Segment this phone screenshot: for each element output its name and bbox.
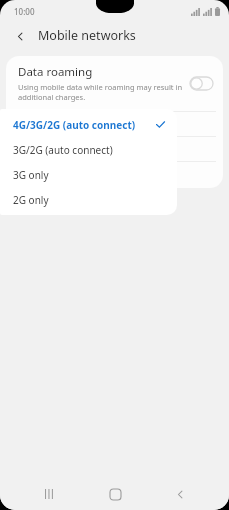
button[interactable]: 3G only: [0, 162, 177, 187]
button[interactable]: Back: [163, 478, 197, 510]
staticText: 10:00: [14, 6, 35, 17]
staticText: Network operators: [18, 167, 121, 183]
staticText: 3G/2G (auto connect): [13, 143, 166, 157]
staticText: Network mode: [18, 116, 99, 132]
button[interactable]: Network mode: [6, 112, 223, 136]
button[interactable]: 4G/3G/2G (auto connect): [0, 112, 177, 137]
button[interactable]: Data roaming: [6, 56, 223, 111]
button[interactable]: 3G/2G (auto connect): [0, 137, 177, 162]
button[interactable]: 2G only: [0, 187, 177, 212]
button[interactable]: Navigate up: [9, 25, 31, 47]
button[interactable]: Home: [98, 478, 132, 510]
staticText: Using mobile data while roaming may resu…: [18, 82, 184, 102]
staticText: Mobile networks: [38, 27, 136, 44]
staticText: 3G only: [13, 168, 166, 182]
staticText: Data roaming: [18, 64, 93, 80]
staticText: 4G/3G/2G (auto connect): [13, 118, 155, 132]
button[interactable]: Access Point Names: [6, 137, 223, 161]
button[interactable]: Recent apps: [32, 478, 66, 510]
button[interactable]: Network operators: [6, 162, 223, 188]
staticText: Access Point Names: [18, 141, 126, 157]
staticText: 2G only: [13, 193, 166, 207]
